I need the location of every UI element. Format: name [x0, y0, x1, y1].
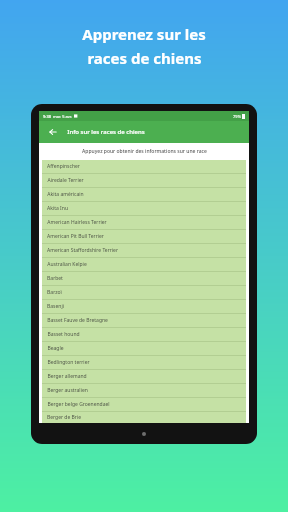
staticText: Basenji [47, 303, 64, 310]
staticText: Basset hound [47, 331, 80, 338]
staticText: Airedale Terrier [47, 177, 84, 184]
staticText: Berger allemand [47, 373, 87, 380]
staticText: Barbet [47, 275, 63, 282]
button[interactable]: Barbet [42, 272, 246, 285]
button[interactable]: Australian Kelpie [42, 258, 246, 271]
button[interactable]: American Staffordshire Terrier [42, 244, 246, 257]
button[interactable]: Berger allemand [42, 370, 246, 383]
button[interactable]: Barzoï [42, 286, 246, 299]
staticText: mar. 5 avr. [53, 114, 72, 119]
staticText: Berger de Brie [47, 414, 81, 421]
button[interactable]: Basset hound [42, 328, 246, 341]
button[interactable]: Back [46, 125, 60, 139]
staticText: Barzoï [47, 289, 62, 296]
button[interactable]: Berger de Brie [42, 412, 246, 423]
staticText: American Staffordshire Terrier [47, 247, 118, 254]
button[interactable]: Berger belge Groenendael [42, 398, 246, 411]
staticText: Akita Inu [47, 205, 68, 212]
button[interactable]: Beagle [42, 342, 246, 355]
staticText: Info sur les races de chiens [67, 128, 145, 136]
staticText: Australian Kelpie [47, 261, 87, 268]
button[interactable]: Berger australien [42, 384, 246, 397]
staticText: Berger belge Groenendael [47, 401, 110, 408]
staticText: American Hairless Terrier [47, 219, 107, 226]
staticText: Berger australien [47, 387, 88, 394]
button[interactable]: American Hairless Terrier [42, 216, 246, 229]
staticText: Bedlington terrier [47, 359, 90, 366]
button[interactable]: Basset Fauve de Bretagne [42, 314, 246, 327]
staticText: 9:38 [43, 114, 51, 119]
staticText: Beagle [47, 345, 64, 352]
button[interactable]: Akita Inu [42, 202, 246, 215]
staticText: races de chiens [87, 48, 202, 68]
staticText: American Pit Bull Terrier [47, 233, 104, 240]
button[interactable]: Basenji [42, 300, 246, 313]
button[interactable]: Bedlington terrier [42, 356, 246, 369]
staticText: Appuyez pour obtenir des informations su… [82, 148, 207, 155]
button[interactable]: American Pit Bull Terrier [42, 230, 246, 243]
button[interactable]: Affenpinscher [42, 160, 246, 173]
staticText: Affenpinscher [47, 163, 80, 170]
staticText: 79% [233, 114, 241, 119]
staticText: Basset Fauve de Bretagne [47, 317, 108, 324]
staticText: Apprenez sur les [82, 24, 206, 44]
staticText: Akita américain [47, 191, 84, 198]
button[interactable]: Akita américain [42, 188, 246, 201]
button[interactable]: Airedale Terrier [42, 174, 246, 187]
